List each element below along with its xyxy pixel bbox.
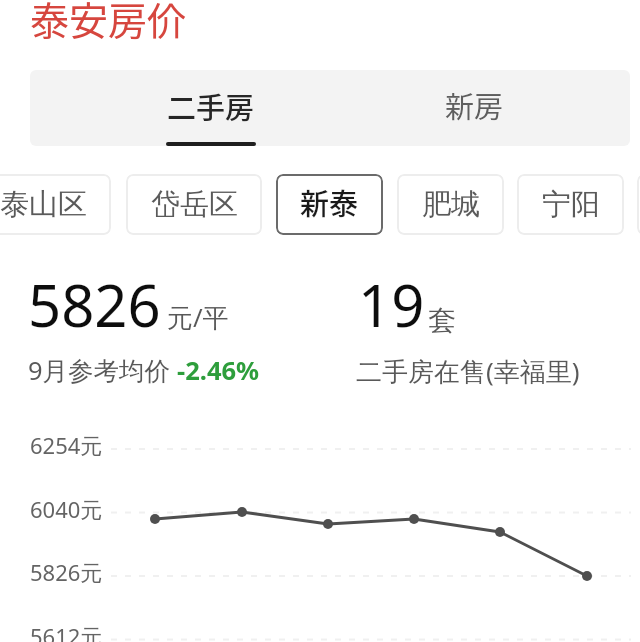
staticText: 19 <box>358 265 425 344</box>
staticText: 岱岳区 <box>151 186 238 223</box>
button[interactable]: 新泰 <box>276 174 383 235</box>
button[interactable]: 宁阳 <box>517 174 624 235</box>
staticText: 宁阳 <box>542 186 600 223</box>
staticText: 泰安房价 <box>30 0 187 46</box>
staticText: 二手房在售(幸福里) <box>356 353 580 389</box>
button[interactable]: 二手房 <box>121 70 301 146</box>
button[interactable]: 东平 <box>637 174 640 235</box>
staticText: -2.46% <box>177 353 260 388</box>
staticText: 新房 <box>445 84 504 126</box>
staticText: 泰山区 <box>0 186 87 223</box>
button[interactable]: 肥城 <box>397 174 504 235</box>
staticText: 套 <box>428 303 456 338</box>
staticText: 元/平 <box>167 299 229 335</box>
staticText: 肥城 <box>422 186 480 223</box>
staticText: 5826元 <box>30 557 103 587</box>
staticText: 5826 <box>28 265 161 344</box>
button[interactable]: 泰山区 <box>0 174 111 235</box>
staticText: 6254元 <box>30 430 103 460</box>
staticText: 新泰 <box>300 181 359 223</box>
staticText: 9月参考均价 <box>28 353 171 388</box>
staticText: 二手房 <box>167 85 255 127</box>
button[interactable]: 新房 <box>384 70 564 146</box>
staticText: 6040元 <box>30 494 103 524</box>
staticText: 5612元 <box>30 621 103 642</box>
button[interactable]: 岱岳区 <box>126 174 262 235</box>
